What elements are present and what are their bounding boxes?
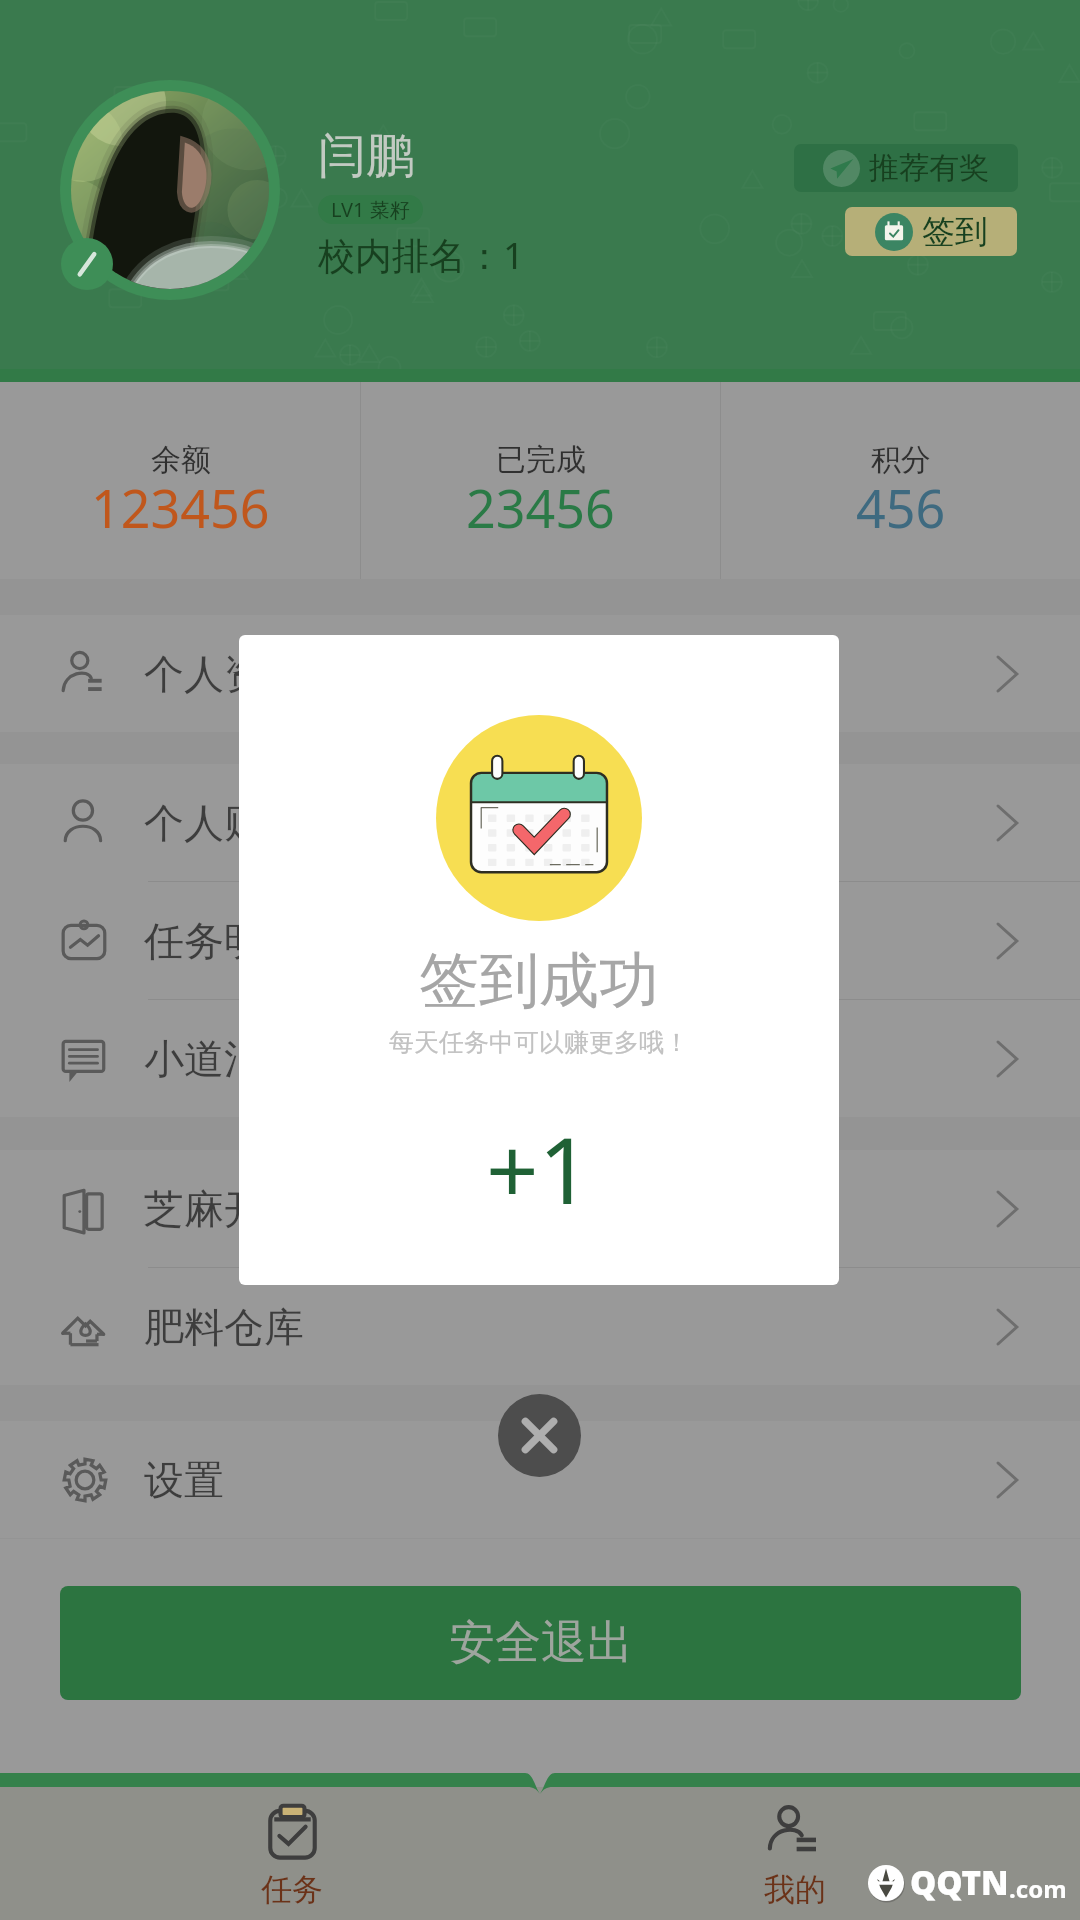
button[interactable]: 余额 (0, 382, 360, 579)
staticText: 安全退出 (449, 1614, 633, 1672)
staticText: 123456 (91, 472, 270, 543)
button[interactable]: Profile photo (71, 91, 269, 289)
staticText: 个人财富 (144, 798, 304, 848)
staticText: 已完成 (496, 441, 586, 479)
button[interactable]: 积分 (721, 382, 1080, 579)
staticText: +1 (486, 1106, 592, 1231)
staticText: 推荐有奖 (869, 149, 989, 187)
staticText: 我的 (764, 1870, 826, 1909)
staticText: 任务 (261, 1870, 323, 1909)
staticText: 签到成功 (419, 943, 659, 1019)
staticText: 闫鹏 (318, 126, 414, 186)
staticText: 余额 (151, 441, 211, 479)
button[interactable]: 签到 (845, 207, 1017, 256)
button[interactable]: 已完成 (361, 382, 720, 579)
staticText: 签到 (922, 211, 988, 253)
staticText: 芝麻开门 (144, 1184, 304, 1234)
button[interactable]: 小道消息 (0, 1000, 1080, 1117)
button[interactable]: 芝麻开门 (0, 1150, 1080, 1267)
button[interactable]: 我的 (675, 1787, 915, 1920)
staticText: 任务明细 (144, 916, 304, 966)
button[interactable]: 个人资料 (0, 615, 1080, 732)
staticText: 23456 (466, 472, 615, 543)
button[interactable]: 肥料仓库 (0, 1268, 1080, 1385)
button[interactable]: Close (498, 1394, 581, 1477)
button[interactable]: 任务明细 (0, 882, 1080, 999)
button[interactable]: 任务 (172, 1787, 412, 1920)
staticText: 设置 (144, 1455, 224, 1505)
staticText: LV1 菜籽 (331, 196, 410, 223)
staticText: 肥料仓库 (144, 1302, 304, 1352)
staticText: 个人资料 (144, 649, 304, 699)
staticText: 每天任务中可以赚更多哦！ (389, 1027, 689, 1058)
staticText: 小道消息 (144, 1034, 304, 1084)
button[interactable]: 安全退出 (60, 1586, 1021, 1700)
staticText: QQTN (910, 1860, 1009, 1905)
button[interactable]: 推荐有奖 (794, 144, 1018, 192)
button[interactable]: 设置 (0, 1421, 1080, 1538)
staticText: 校内排名：1 (318, 229, 525, 280)
button[interactable]: Edit avatar (61, 238, 113, 290)
staticText: 456 (856, 472, 946, 543)
staticText: .com (1009, 1872, 1067, 1905)
button[interactable]: 个人财富 (0, 764, 1080, 881)
button[interactable]: LV1 菜籽 (318, 195, 423, 224)
staticText: 积分 (871, 441, 931, 479)
